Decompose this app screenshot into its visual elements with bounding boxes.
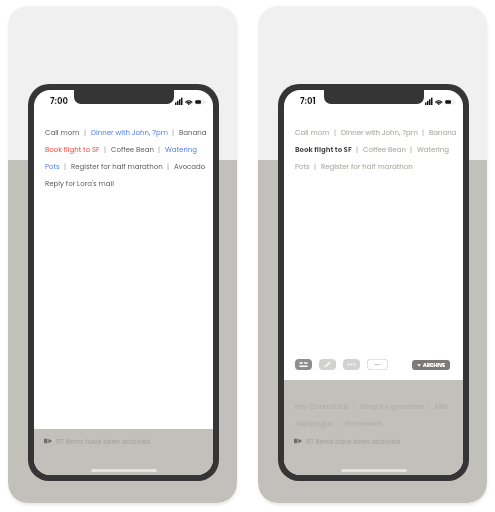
staticText: Coffee Bean — [111, 145, 154, 155]
button[interactable]: Watering — [165, 145, 197, 155]
button[interactable]: Pay Council tax — [295, 402, 349, 412]
staticText: | — [422, 128, 425, 138]
button[interactable]: Homework — [345, 419, 383, 429]
button[interactable]: Book flight to SF — [295, 145, 352, 155]
staticText: | — [158, 145, 161, 155]
staticText: Book flight to SF — [45, 145, 100, 155]
button[interactable]: Shop for groceries — [360, 402, 424, 412]
button[interactable]: Reply for Lora's mail — [45, 179, 114, 189]
button[interactable]: Format — [295, 359, 312, 370]
button[interactable]: Dinner with John, 7pm — [91, 128, 168, 138]
button[interactable]: Call mom — [45, 128, 80, 138]
staticText: Watering — [417, 145, 449, 155]
staticText: Asparagus — [295, 419, 334, 429]
staticText: Register for half marathon — [71, 162, 163, 172]
staticText: 7:01 — [300, 95, 316, 107]
staticText: Book flight to SF — [295, 145, 352, 155]
button[interactable]: Asparagus — [295, 419, 334, 429]
staticText: | — [167, 162, 170, 172]
button[interactable]: 117 items have been archived — [294, 435, 463, 447]
button[interactable]: Avocado — [174, 162, 206, 172]
staticText: 117 items have been archived — [306, 437, 401, 446]
staticText: Call mom — [45, 128, 80, 138]
button[interactable]: Coffee Bean — [363, 145, 406, 155]
button[interactable]: Banana — [429, 128, 457, 138]
staticText: Coffee Bean — [363, 145, 406, 155]
button[interactable]: 117 items have been archived — [44, 435, 213, 447]
staticText: 117 items have been archived — [56, 437, 151, 446]
staticText: | — [104, 145, 107, 155]
button[interactable]: Dinner with John, 7pm — [341, 128, 418, 138]
staticText: | — [172, 128, 175, 138]
staticText: Banana — [179, 128, 207, 138]
staticText: Pots — [295, 162, 310, 172]
button[interactable]: Milk — [435, 402, 449, 412]
staticText: | — [334, 128, 337, 138]
staticText: Dinner with John, 7pm — [91, 128, 168, 138]
staticText: Pay Council tax — [295, 402, 349, 412]
button[interactable]: Register for half marathon — [71, 162, 163, 172]
button[interactable]: ARCHIVE — [412, 360, 450, 370]
staticText: | — [356, 145, 359, 155]
button[interactable]: Pots — [45, 162, 60, 172]
staticText: Milk — [435, 402, 449, 412]
staticText: ARCHIVE — [423, 362, 446, 369]
staticText: | — [410, 145, 413, 155]
button[interactable]: Banana — [179, 128, 207, 138]
staticText: Call mom — [295, 128, 330, 138]
button[interactable]: Call mom — [295, 128, 330, 138]
button[interactable]: Pots — [295, 162, 310, 172]
button[interactable]: Coffee Bean — [111, 145, 154, 155]
staticText: Avocado — [174, 162, 206, 172]
staticText: 7:00 — [50, 95, 69, 107]
staticText: | — [64, 162, 67, 172]
button[interactable]: Watering — [417, 145, 449, 155]
staticText: Reply for Lora's mail — [45, 179, 114, 189]
staticText: | — [314, 162, 317, 172]
staticText: Homework — [345, 419, 383, 429]
staticText: Register for half marathon — [321, 162, 413, 172]
staticText: Banana — [429, 128, 457, 138]
button[interactable]: Edit — [319, 359, 336, 370]
button[interactable]: Book flight to SF — [45, 145, 100, 155]
button[interactable]: Register for half marathon — [321, 162, 413, 172]
staticText: Dinner with John, 7pm — [341, 128, 418, 138]
staticText: Watering — [165, 145, 197, 155]
button[interactable]: More — [343, 359, 360, 370]
button[interactable]: Undo — [367, 359, 388, 370]
staticText: | — [84, 128, 87, 138]
staticText: Shop for groceries — [360, 402, 424, 412]
staticText: Pots — [45, 162, 60, 172]
